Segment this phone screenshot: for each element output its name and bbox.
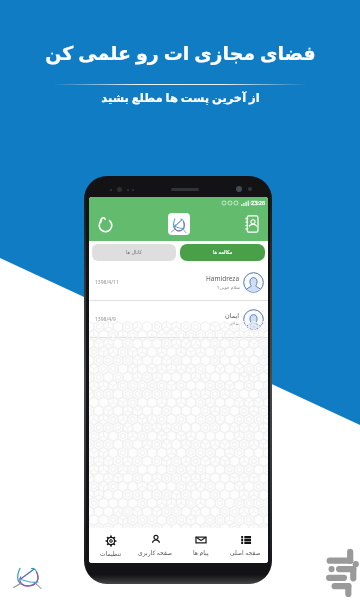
staticText: کانال ها (126, 249, 142, 256)
staticText: صفحه کاربری (138, 549, 173, 557)
button[interactable]: صفحه اصلی (223, 530, 268, 561)
button[interactable]: Contacts (241, 213, 263, 235)
staticText: تنظیمات (100, 550, 122, 557)
staticText: سلام (230, 321, 240, 326)
staticText: پیام ها (193, 549, 209, 557)
button[interactable]: کانال ها (92, 244, 176, 261)
staticText: 1398/4/11 (95, 279, 119, 286)
staticText: فضای مجازی ات رو علمی کن (45, 40, 316, 66)
staticText: Hamidreza (206, 274, 240, 283)
button[interactable]: صفحه کاربری (133, 530, 178, 561)
staticText: مکالمه ها (213, 249, 233, 256)
button[interactable]: مکالمه ها (180, 244, 265, 261)
staticText: ایمان (225, 312, 240, 320)
button[interactable]: App logo (168, 213, 190, 235)
button[interactable]: تنظیمات (89, 531, 133, 561)
button[interactable]: 1398/4/9 (89, 301, 268, 337)
staticText: 23:26 (251, 199, 266, 206)
button[interactable]: پیام ها (178, 530, 223, 561)
staticText: سلام خوبی؟ (217, 284, 240, 290)
button[interactable]: Refresh (94, 213, 116, 235)
staticText: از آخرین پست ها مطلع بشید (101, 90, 260, 106)
button[interactable]: 1398/4/11 (89, 264, 268, 300)
staticText: صفحه اصلی (230, 549, 261, 557)
staticText: 1398/4/9 (95, 316, 116, 323)
